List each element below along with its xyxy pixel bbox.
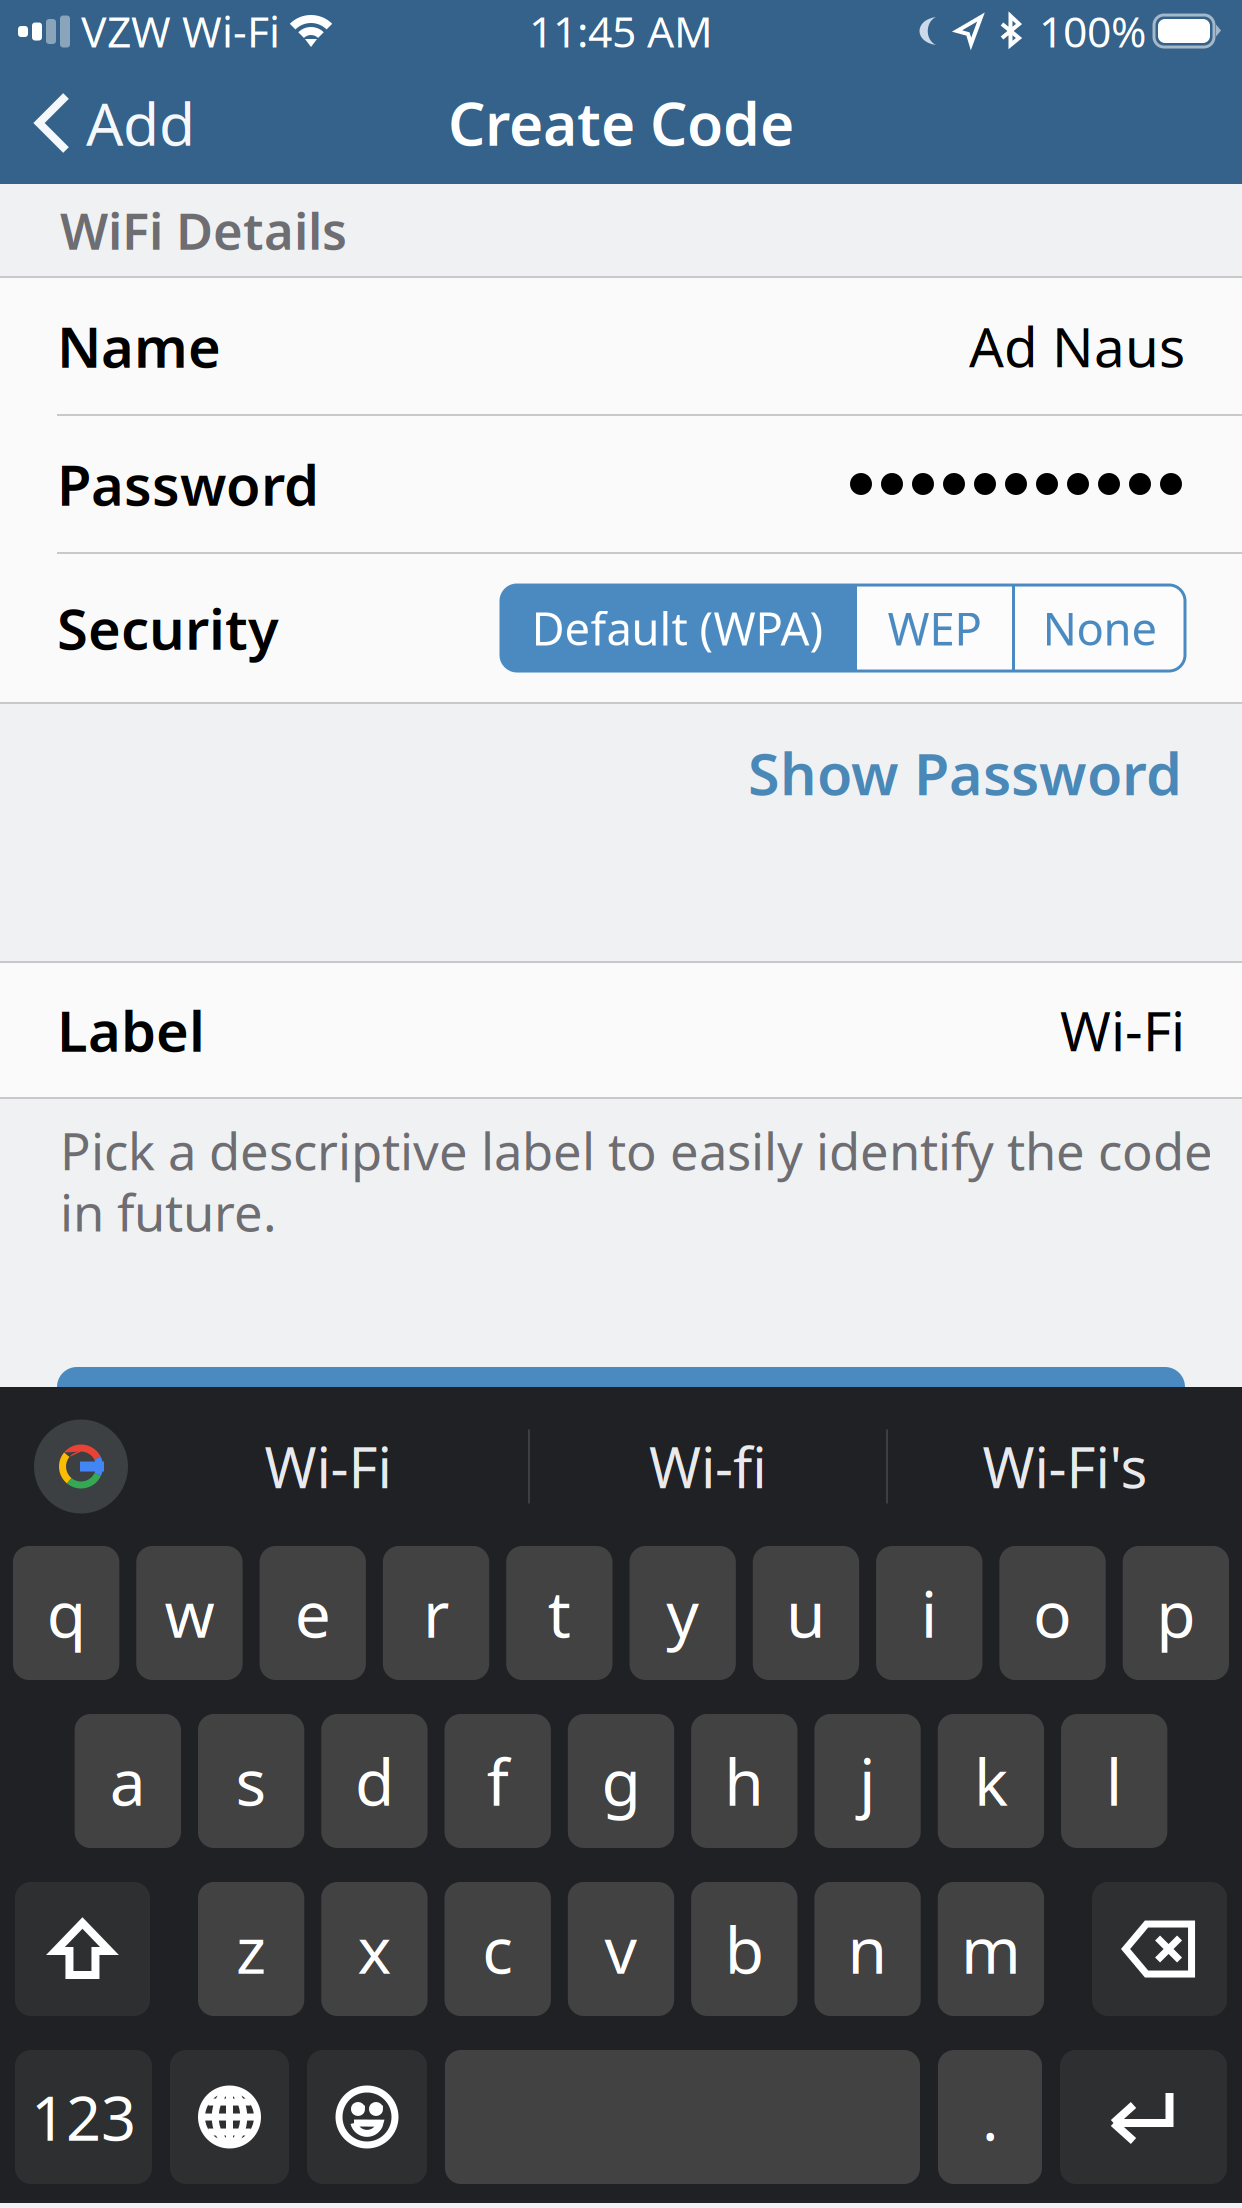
button[interactable]: 123	[15, 2050, 152, 2184]
button[interactable]: a	[75, 1714, 181, 1848]
button[interactable]: d	[321, 1714, 428, 1848]
staticText: q	[47, 1570, 86, 1655]
staticText: p	[1156, 1570, 1195, 1655]
button[interactable]: Default (WPA)	[501, 585, 854, 671]
staticText: o	[1033, 1570, 1072, 1655]
button[interactable]: u	[753, 1546, 859, 1680]
staticText: Show Password	[748, 735, 1182, 811]
staticText: t	[548, 1570, 571, 1655]
staticText: l	[1106, 1738, 1123, 1823]
button[interactable]: b	[674, 1882, 797, 2016]
button[interactable]: w	[136, 1546, 243, 1680]
staticText: Wi-Fi	[264, 1429, 391, 1504]
staticText: f	[487, 1738, 509, 1823]
button[interactable]: Wi-fi	[530, 1406, 886, 1526]
staticText: x	[357, 1906, 391, 1991]
button[interactable]: r	[383, 1546, 489, 1680]
staticText: e	[295, 1570, 331, 1655]
staticText: Wi-Fi	[1060, 994, 1185, 1066]
staticText: Label	[57, 993, 205, 1067]
staticText: Security	[57, 591, 279, 665]
staticText: in future.	[60, 1178, 277, 1246]
button[interactable]: o	[999, 1546, 1106, 1680]
button[interactable]: .	[938, 2050, 1042, 2184]
button[interactable]: h	[691, 1714, 797, 1848]
staticText: v	[604, 1906, 637, 1991]
button[interactable]: q	[13, 1546, 119, 1680]
staticText: 123	[31, 2076, 136, 2158]
button[interactable]: z	[198, 1882, 304, 2016]
staticText: s	[236, 1738, 267, 1823]
staticText: WEP	[887, 598, 981, 658]
staticText: Ad Naus	[969, 310, 1185, 382]
staticText: Wi-fi	[649, 1429, 767, 1504]
button[interactable]: Show Password	[748, 704, 1242, 835]
button[interactable]: t	[506, 1546, 612, 1680]
button[interactable]: Shift	[15, 1882, 150, 2016]
button[interactable]: Switch keyboard	[170, 2050, 289, 2184]
staticText: g	[601, 1738, 640, 1823]
staticText: WiFi Details	[60, 196, 347, 264]
staticText: Wi-Fi's	[982, 1429, 1147, 1504]
button[interactable]: e	[260, 1546, 366, 1680]
staticText: d	[355, 1738, 394, 1823]
button[interactable]: k	[938, 1714, 1044, 1848]
staticText: Password	[57, 447, 319, 521]
button[interactable]: l	[1061, 1714, 1167, 1848]
staticText: i	[921, 1570, 938, 1655]
button[interactable]: f	[445, 1714, 551, 1848]
button[interactable]: g	[568, 1714, 674, 1848]
staticText: .	[982, 2076, 998, 2158]
button[interactable]: m	[921, 1882, 1044, 2016]
staticText: y	[666, 1570, 699, 1655]
staticText: None	[1042, 598, 1157, 658]
staticText: c	[482, 1906, 513, 1991]
button[interactable]: c	[428, 1882, 551, 2016]
button[interactable]: j	[814, 1714, 921, 1848]
staticText: Create Code	[448, 84, 794, 162]
staticText: Add	[86, 84, 195, 162]
staticText: Default (WPA)	[531, 598, 823, 658]
button[interactable]: n	[797, 1882, 921, 2016]
button[interactable]: Wi-Fi	[128, 1406, 528, 1526]
staticText: r	[423, 1570, 449, 1655]
button[interactable]: WEP	[857, 585, 1012, 671]
staticText: w	[164, 1570, 214, 1655]
staticText: z	[236, 1906, 266, 1991]
staticText: h	[724, 1738, 764, 1823]
button[interactable]: p	[1123, 1546, 1229, 1680]
staticText: n	[848, 1906, 888, 1991]
button[interactable]: v	[551, 1882, 674, 2016]
button[interactable]: i	[876, 1546, 982, 1680]
staticText: j	[859, 1738, 876, 1823]
staticText: 11:45 AM	[529, 3, 713, 59]
staticText: Pick a descriptive label to easily ident…	[60, 1117, 1213, 1184]
button[interactable]: Add	[0, 62, 219, 184]
button[interactable]: Google	[34, 1419, 128, 1513]
button[interactable]: Wi-Fi's	[888, 1406, 1242, 1526]
staticText: Name	[57, 309, 221, 383]
button[interactable]: y	[629, 1546, 736, 1680]
button[interactable]: Return	[1060, 2050, 1227, 2184]
button[interactable]: s	[198, 1714, 304, 1848]
button[interactable]: Backspace	[1092, 1882, 1227, 2016]
staticText: VZW Wi-Fi	[81, 3, 280, 59]
button[interactable]: Emoji	[307, 2050, 427, 2184]
button[interactable]: None	[1015, 585, 1185, 671]
button[interactable]: x	[304, 1882, 428, 2016]
staticText: 100%	[1039, 3, 1146, 59]
staticText: u	[786, 1570, 826, 1655]
staticText: k	[974, 1738, 1008, 1823]
staticText: a	[110, 1738, 146, 1823]
staticText: b	[725, 1906, 764, 1991]
staticText: m	[961, 1906, 1021, 1991]
